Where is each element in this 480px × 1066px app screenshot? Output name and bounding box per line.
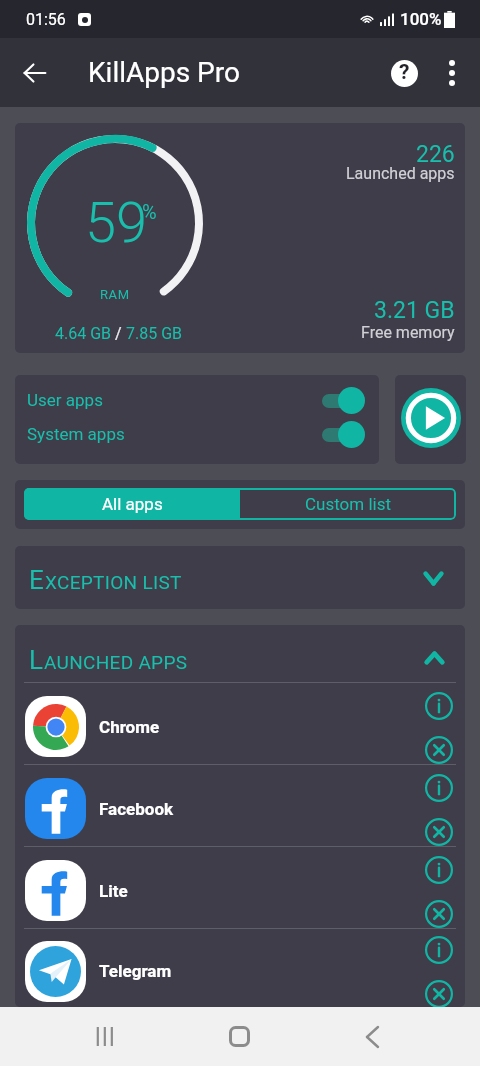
button[interactable]: More options [428, 49, 476, 97]
button[interactable]: App info [425, 856, 453, 884]
button[interactable]: User apps [15, 386, 379, 414]
button[interactable]: Chrome [15, 683, 465, 764]
button[interactable]: Help [380, 49, 428, 97]
button[interactable]: Custom list [240, 488, 456, 520]
staticText: RAM [100, 287, 130, 302]
button[interactable]: Kill app [425, 818, 453, 846]
staticText: Free memory [361, 323, 455, 342]
staticText: 100% [400, 9, 442, 29]
staticText: 7.85 GB [122, 324, 182, 343]
staticText: KillApps Pro [88, 56, 240, 89]
staticText: XCEPTION LIST [45, 571, 182, 593]
staticText: Chrome [99, 717, 160, 737]
button[interactable]: All apps [24, 488, 240, 520]
button[interactable]: E [15, 546, 465, 609]
button[interactable]: App info [425, 692, 453, 720]
button[interactable]: App info [425, 936, 453, 964]
staticText: 4.64 GB [55, 324, 115, 343]
button[interactable]: Kill app [425, 980, 453, 1007]
staticText: / [115, 324, 122, 343]
staticText: System apps [27, 424, 125, 444]
staticText: 01:56 [26, 10, 66, 29]
staticText: % [142, 200, 157, 223]
staticText: Lite [99, 881, 128, 901]
staticText: Custom list [305, 494, 392, 514]
button[interactable]: Kill app [425, 900, 453, 928]
button[interactable]: System apps [15, 420, 379, 448]
staticText: AUNCHED APPS [44, 651, 188, 673]
button[interactable]: Recents [80, 1012, 129, 1061]
button[interactable]: Facebook [15, 765, 465, 846]
staticText: Facebook [99, 799, 174, 819]
staticText: Telegram [99, 961, 172, 981]
staticText: ? [399, 60, 410, 85]
staticText: 59 [85, 190, 148, 256]
staticText: All apps [102, 494, 163, 514]
button[interactable]: App info [425, 774, 453, 802]
staticText: E [29, 565, 45, 595]
button[interactable]: Back [348, 1012, 397, 1061]
button[interactable]: Kill app [425, 736, 453, 764]
staticText: User apps [27, 390, 103, 410]
button[interactable]: Lite [15, 847, 465, 928]
button[interactable]: Back [11, 49, 59, 97]
button[interactable]: Telegram [15, 929, 465, 1007]
button[interactable]: Home [215, 1012, 264, 1061]
button[interactable]: L [15, 625, 465, 682]
staticText: Launched apps [346, 164, 455, 183]
staticText: 3.21 GB [374, 297, 455, 324]
staticText: 226 [416, 141, 455, 168]
staticText: L [29, 645, 44, 675]
button[interactable]: Start killing apps [395, 375, 466, 464]
